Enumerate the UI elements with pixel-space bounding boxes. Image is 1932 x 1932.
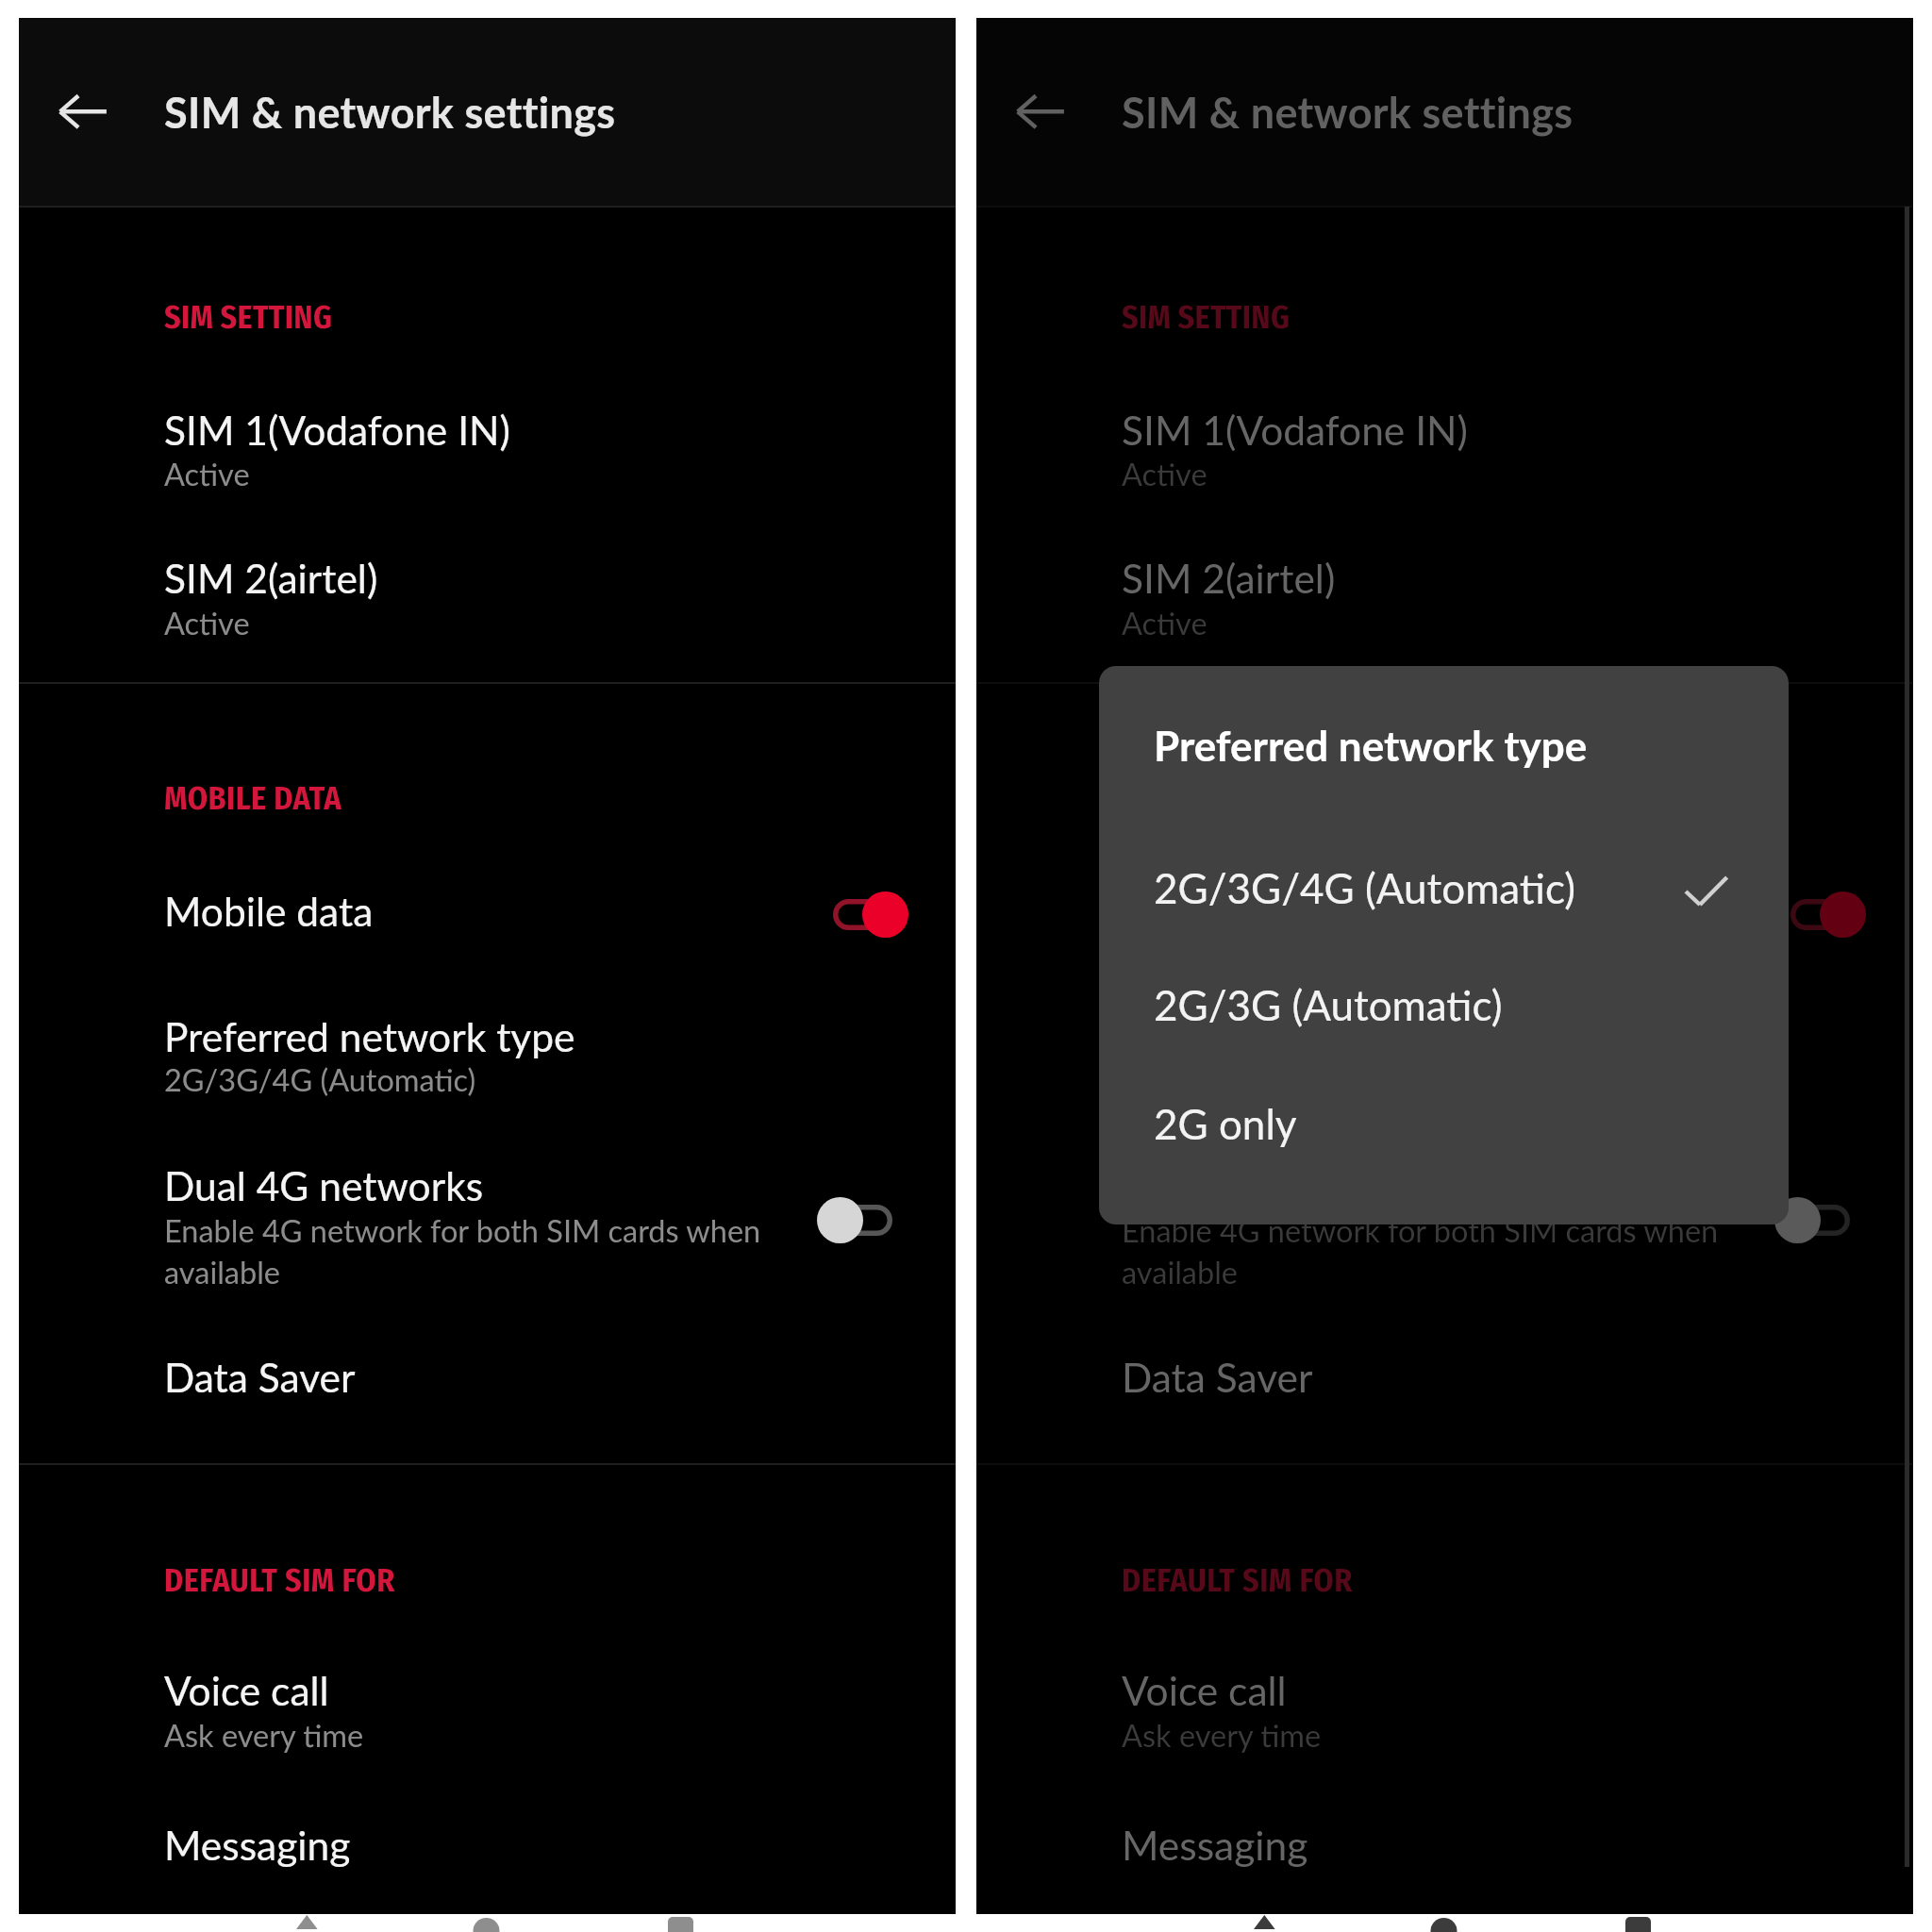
staticText: Messaging	[1122, 1821, 1308, 1869]
button[interactable]: Messaging	[19, 1783, 956, 1882]
staticText: SIM SETTING	[1122, 298, 1291, 337]
staticText: available	[164, 1254, 281, 1291]
staticText: SIM 1(Vodafone IN)	[1122, 406, 1468, 454]
button[interactable]: Voice call	[19, 1632, 956, 1778]
button[interactable]: Mobile data	[976, 872, 1913, 961]
staticText: MOBILE DATA	[164, 779, 342, 818]
button[interactable]: 2G/3G (Automatic)	[1099, 951, 1789, 1068]
staticText: Enable 4G network for both SIM cards whe…	[164, 1212, 761, 1249]
staticText: 2G only	[1154, 1099, 1297, 1149]
button[interactable]: Dual 4G networks	[19, 1132, 956, 1307]
staticText: Voice call	[164, 1666, 329, 1714]
staticText: Preferred network type	[1154, 721, 1588, 771]
button[interactable]: Messaging	[976, 1783, 1913, 1882]
button[interactable]: SIM 2(airtel)	[19, 519, 956, 682]
staticText: Ask every time	[1122, 1717, 1322, 1754]
staticText: Active	[164, 456, 250, 492]
staticText: Enable 4G network for both SIM cards whe…	[1122, 1212, 1719, 1249]
button[interactable]: Preferred network type	[19, 981, 956, 1123]
staticText: Ask every time	[164, 1717, 364, 1754]
staticText: Active	[1122, 456, 1207, 492]
button[interactable]: Data Saver	[976, 1330, 1913, 1415]
staticText: Voice call	[1122, 1666, 1287, 1714]
button[interactable]: Back	[37, 74, 112, 149]
staticText: Preferred network type	[164, 1012, 575, 1060]
button[interactable]: Dual 4G networks	[817, 1197, 908, 1243]
staticText: Data Saver	[164, 1353, 356, 1401]
button[interactable]: SIM 1(Vodafone IN)	[976, 370, 1913, 515]
button[interactable]: Preferred network type	[976, 981, 1913, 1123]
button[interactable]: SIM 2(airtel)	[976, 519, 1913, 682]
staticText: Active	[164, 605, 250, 641]
staticText: SIM 2(airtel)	[164, 554, 378, 602]
staticText: SIM & network settings	[1122, 87, 1574, 138]
staticText: SIM 1(Vodafone IN)	[164, 406, 510, 454]
button[interactable]: 2G/3G/4G (Automatic)	[1099, 832, 1789, 949]
staticText: SIM 2(airtel)	[1122, 554, 1336, 602]
button[interactable]: Dual 4G networks	[1774, 1197, 1866, 1243]
staticText: Preferred network type	[1122, 1012, 1533, 1060]
staticText: Data Saver	[1122, 1353, 1313, 1401]
staticText: DEFAULT SIM FOR	[164, 1561, 395, 1600]
button[interactable]: Mobile data	[817, 891, 908, 938]
staticText: Messaging	[164, 1821, 351, 1869]
staticText: Mobile data	[1122, 887, 1331, 935]
button[interactable]: 2G only	[1099, 1070, 1789, 1187]
staticText: DEFAULT SIM FOR	[1122, 1561, 1353, 1600]
staticText: 2G/3G/4G (Automatic)	[164, 1061, 476, 1098]
staticText: Mobile data	[164, 887, 374, 935]
staticText: 2G/3G/4G (Automatic)	[1154, 863, 1576, 913]
button[interactable]: Data Saver	[19, 1330, 956, 1415]
button[interactable]: Back	[994, 74, 1070, 149]
staticText: SIM & network settings	[164, 87, 616, 138]
button[interactable]: Mobile data	[1774, 891, 1866, 938]
staticText: Dual 4G networks	[164, 1161, 484, 1209]
staticText: 2G/3G (Automatic)	[1154, 980, 1503, 1030]
staticText: available	[1122, 1254, 1239, 1291]
button[interactable]: Voice call	[976, 1632, 1913, 1778]
staticText: Active	[1122, 605, 1207, 641]
staticText: SIM SETTING	[164, 298, 333, 337]
button[interactable]: Dual 4G networks	[976, 1132, 1913, 1307]
button[interactable]: Mobile data	[19, 872, 956, 961]
button[interactable]: SIM 1(Vodafone IN)	[19, 370, 956, 515]
